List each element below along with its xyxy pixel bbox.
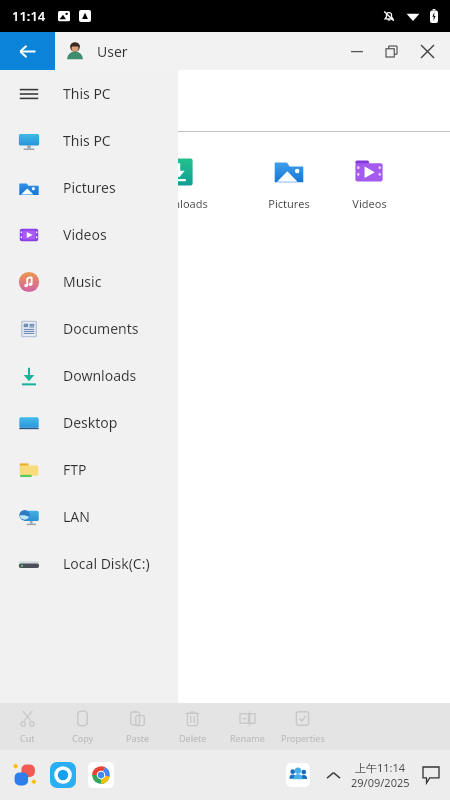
staticText: Documents <box>63 319 139 338</box>
button[interactable]: This PC <box>0 117 178 164</box>
button[interactable]: Downloads <box>148 155 210 211</box>
button[interactable]: This PC <box>0 70 178 117</box>
staticText: Properties <box>281 732 325 744</box>
button[interactable]: Music <box>0 258 178 305</box>
button[interactable]: Delete <box>165 703 220 750</box>
button[interactable]: FTP <box>0 446 178 493</box>
button[interactable]: Downloads <box>0 352 178 399</box>
staticText: Local Disk(C:) <box>63 554 150 573</box>
staticText: User <box>97 42 128 61</box>
button[interactable]: Local Disk(C:) <box>0 540 178 587</box>
staticText: This PC <box>63 131 111 150</box>
button[interactable]: Videos <box>338 155 400 211</box>
button[interactable]: Files <box>8 758 42 792</box>
button[interactable]: Pictures <box>0 164 178 211</box>
button[interactable]: Minimize <box>340 34 374 68</box>
staticText: Copy <box>72 732 94 744</box>
button[interactable]: Cut <box>0 703 55 750</box>
staticText: Rename <box>230 732 265 744</box>
button[interactable]: Paste <box>110 703 165 750</box>
staticText: Desktop <box>63 413 118 432</box>
button[interactable]: 上午11:14 <box>351 760 410 790</box>
staticText: Paste <box>126 732 150 744</box>
staticText: Music <box>63 272 102 291</box>
staticText: LAN <box>63 507 90 526</box>
button[interactable]: Documents <box>0 305 178 352</box>
button[interactable]: Videos <box>0 211 178 258</box>
staticText: This PC <box>63 84 111 103</box>
button[interactable]: LAN <box>0 493 178 540</box>
button[interactable]: Notifications <box>418 762 444 788</box>
button[interactable]: Show hidden icons <box>321 763 345 787</box>
staticText: FTP <box>63 460 87 479</box>
button[interactable]: Back <box>0 32 55 70</box>
button[interactable]: Rename <box>220 703 275 750</box>
staticText: Pictures <box>63 178 116 197</box>
button[interactable]: Pictures <box>258 155 320 211</box>
button[interactable]: Desktop <box>0 399 178 446</box>
staticText: 上午11:14 <box>355 760 406 775</box>
staticText: Videos <box>352 196 387 211</box>
button[interactable]: Chrome <box>84 758 118 792</box>
staticText: Cut <box>20 732 35 744</box>
button[interactable]: Assistant <box>46 758 80 792</box>
staticText: Downloads <box>150 196 208 211</box>
button[interactable]: People <box>283 760 313 790</box>
staticText: 11:14 <box>12 7 46 25</box>
staticText: Delete <box>179 732 207 744</box>
button[interactable]: Copy <box>55 703 110 750</box>
staticText: Videos <box>63 225 107 244</box>
staticText: Downloads <box>63 366 137 385</box>
button[interactable]: Properties <box>275 703 330 750</box>
button[interactable]: Restore <box>374 34 408 68</box>
staticText: 29/09/2025 <box>351 775 410 790</box>
staticText: Pictures <box>268 196 310 211</box>
button[interactable]: Close <box>408 32 446 70</box>
